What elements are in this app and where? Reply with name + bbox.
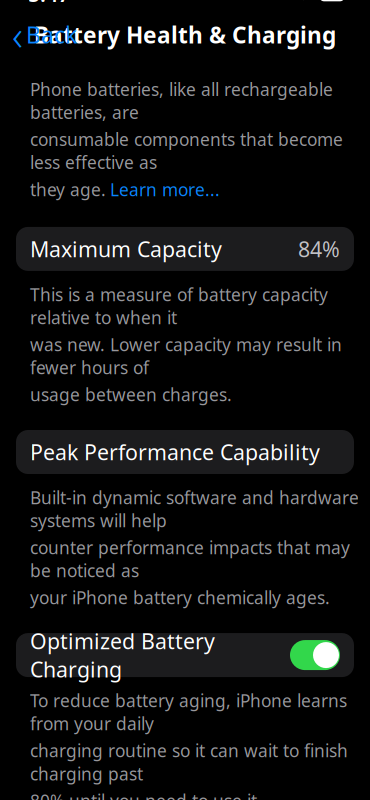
staticText: Battery Health & Charging — [34, 20, 336, 50]
staticText: Built-in dynamic software and hardware s… — [30, 486, 359, 532]
staticText: 5:47 — [28, 0, 70, 8]
staticText: consumable components that become less e… — [30, 128, 343, 174]
staticText: Learn more... — [110, 178, 220, 201]
staticText: To reduce battery aging, iPhone learns f… — [30, 689, 347, 735]
staticText: Back — [26, 20, 77, 50]
staticText: charging routine so it can wait to finis… — [30, 739, 348, 785]
staticText: counter performance impacts that may be … — [30, 536, 350, 582]
button[interactable]: ‹ — [0, 3, 87, 66]
staticText: 80% until you need to use it. — [30, 789, 262, 800]
staticText: Phone batteries, like all rechargeable b… — [30, 78, 333, 124]
staticText: your iPhone battery chemically ages. — [30, 586, 330, 609]
staticText: This is a measure of battery capacity re… — [30, 283, 328, 329]
button[interactable]: Maximum Capacity — [16, 227, 354, 271]
staticText: 94 — [324, 0, 340, 4]
staticText: Optimized Battery Charging — [30, 627, 215, 683]
staticText: was new. Lower capacity may result in fe… — [30, 333, 342, 379]
button[interactable]: Optimized Battery Charging — [16, 633, 354, 677]
button[interactable]: Peak Performance Capability — [16, 430, 354, 474]
staticText: 84% — [298, 235, 340, 263]
staticText: ‹ — [12, 7, 23, 62]
staticText: Maximum Capacity — [30, 235, 222, 263]
button[interactable]: Learn more... — [110, 178, 220, 201]
staticText: usage between charges. — [30, 383, 232, 406]
staticText: Peak Performance Capability — [30, 438, 320, 466]
staticText: they age. — [30, 178, 106, 201]
